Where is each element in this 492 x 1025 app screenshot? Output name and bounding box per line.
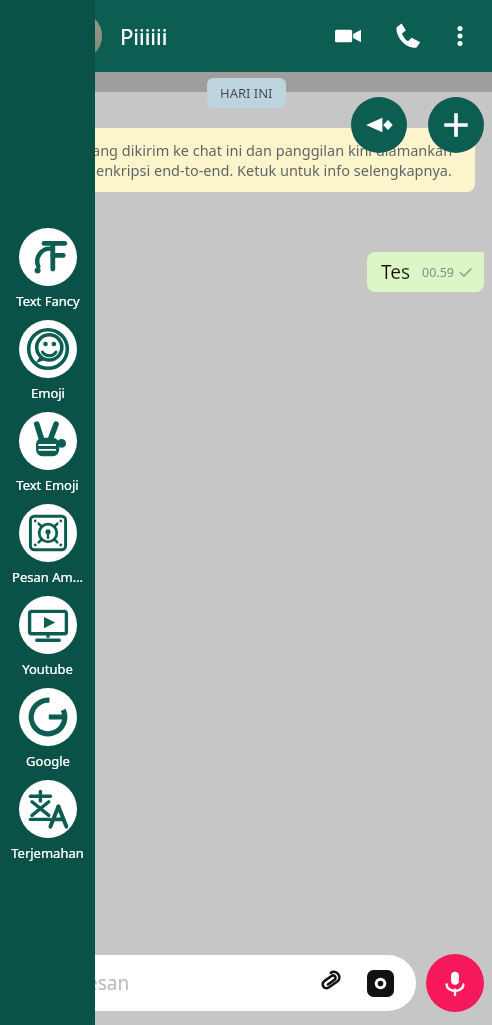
button[interactable]: Ketik pesan bbox=[6, 955, 416, 1011]
button[interactable]: Send sticker bbox=[351, 97, 407, 153]
staticText: Ketik pesan bbox=[26, 970, 312, 996]
button[interactable]: Profile photo bbox=[54, 12, 102, 60]
staticText: Tes bbox=[381, 259, 411, 285]
staticText: Text Emoji bbox=[16, 476, 79, 494]
staticText: Pesan yang dikirim ke chat ini dan pangg… bbox=[31, 140, 461, 180]
staticText: Pesan Am… bbox=[12, 568, 83, 586]
button[interactable]: Youtube bbox=[0, 596, 95, 688]
button[interactable]: Attach bbox=[312, 963, 352, 1003]
button[interactable]: Pesan Am… bbox=[0, 504, 95, 596]
button[interactable]: Voice call bbox=[386, 14, 430, 58]
button[interactable]: More options bbox=[440, 16, 480, 56]
staticText: Terjemahan bbox=[11, 844, 84, 862]
button[interactable]: Video call bbox=[326, 14, 370, 58]
staticText: Youtube bbox=[22, 660, 73, 678]
button[interactable]: Piiiiii bbox=[120, 21, 326, 51]
button[interactable]: Tes bbox=[367, 252, 484, 292]
button[interactable]: Add bbox=[428, 97, 484, 153]
staticText: 00.59 bbox=[422, 264, 454, 281]
button[interactable]: Emoji bbox=[0, 320, 95, 412]
button[interactable]: Camera bbox=[360, 963, 400, 1003]
staticText: HARI INI bbox=[220, 84, 273, 102]
button[interactable]: Google bbox=[0, 688, 95, 780]
button[interactable]: Pesan yang dikirim ke chat ini dan pangg… bbox=[17, 128, 475, 192]
staticText: Emoji bbox=[31, 384, 65, 402]
button[interactable]: Text Fancy bbox=[0, 228, 95, 320]
button[interactable]: Record voice message bbox=[426, 954, 484, 1012]
button[interactable]: Text Emoji bbox=[0, 412, 95, 504]
staticText: Google bbox=[26, 752, 70, 770]
button[interactable]: Terjemahan bbox=[0, 780, 95, 872]
staticText: Text Fancy bbox=[16, 292, 80, 310]
button[interactable]: HARI INI bbox=[207, 78, 286, 108]
